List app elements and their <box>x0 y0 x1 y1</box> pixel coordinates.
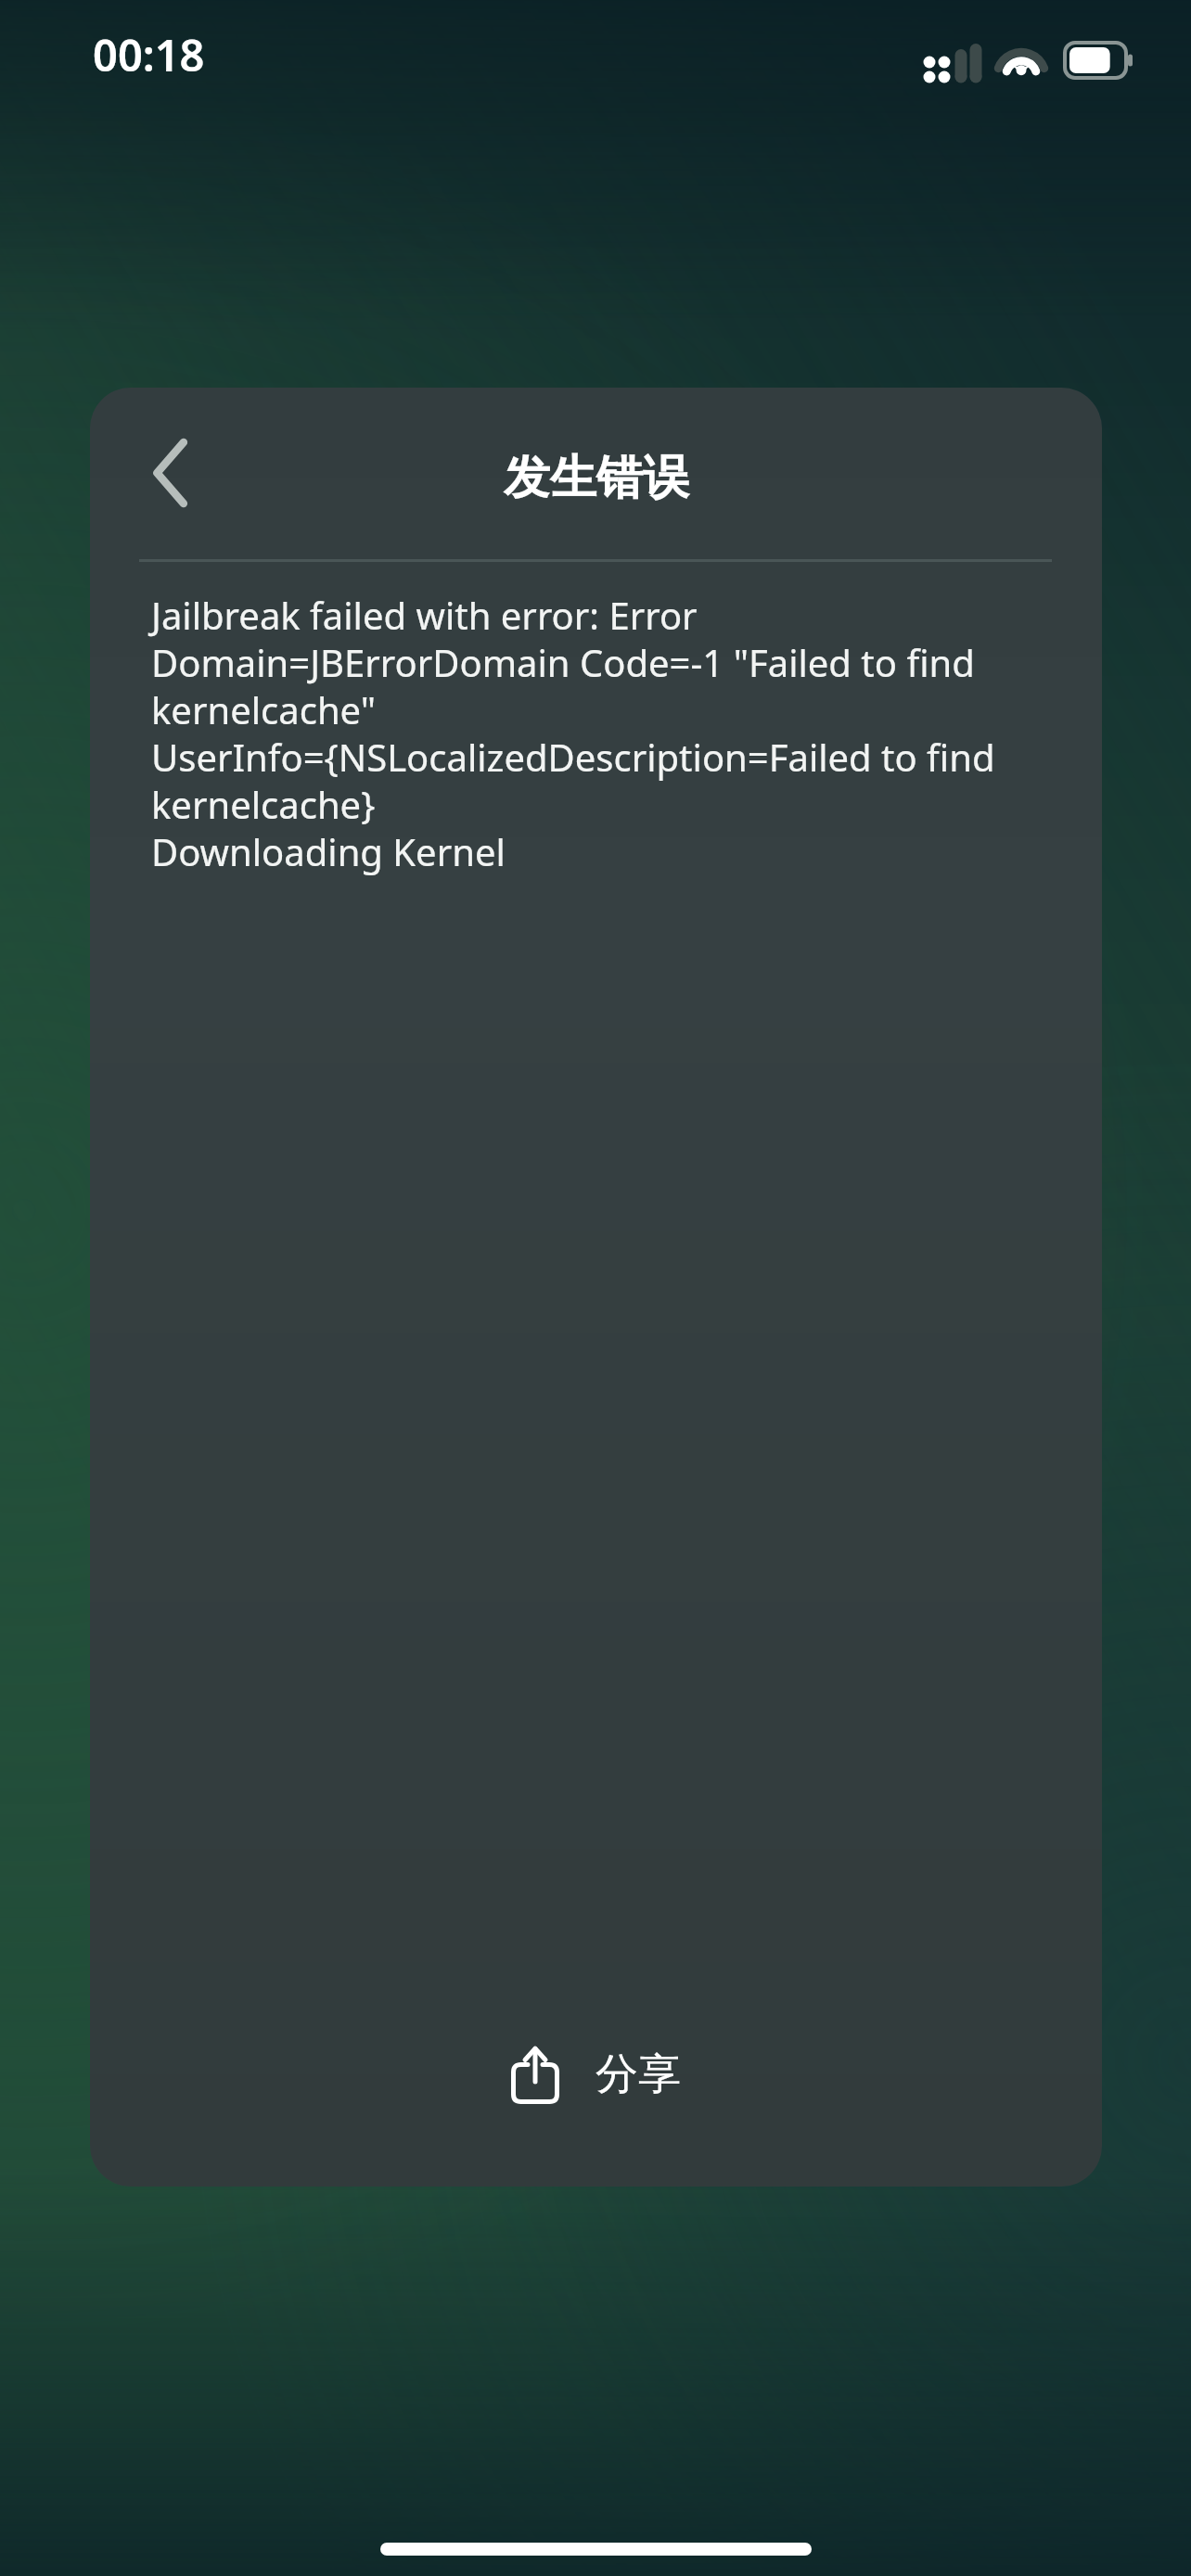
button[interactable]: 分享 <box>486 2033 707 2116</box>
staticText: Jailbreak failed with error: Error Domai… <box>151 590 995 877</box>
staticText: 00:18 <box>93 25 205 84</box>
button[interactable]: Back <box>107 408 237 538</box>
staticText: 分享 <box>595 2047 681 2101</box>
staticText: 发生错误 <box>504 449 689 507</box>
